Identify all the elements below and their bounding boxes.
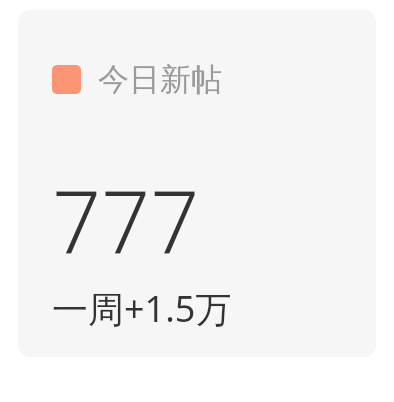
staticText: 777 (52, 161, 356, 278)
staticText: 一周+1.5万 (52, 284, 356, 333)
button[interactable]: 今日新帖 指标 (18, 10, 376, 357)
other: 今日新帖 指标 (52, 65, 81, 94)
staticText: 今日新帖 (98, 60, 222, 99)
